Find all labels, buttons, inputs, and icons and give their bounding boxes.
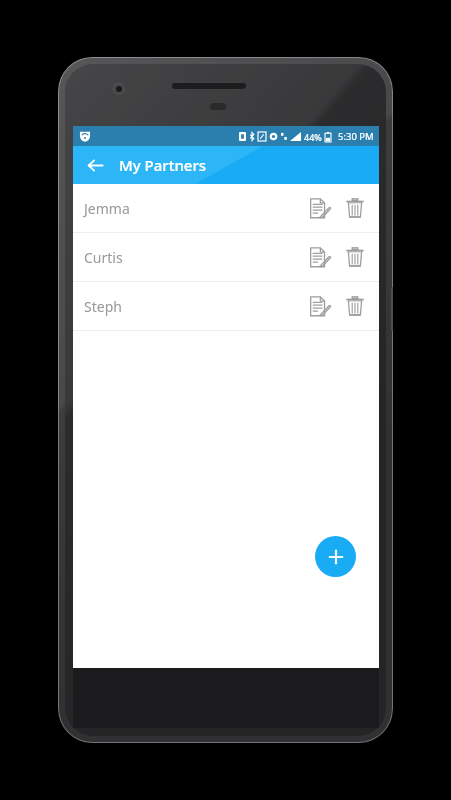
button[interactable]: Jemma [73, 184, 379, 232]
staticText: Curtis [84, 248, 302, 267]
button[interactable]: Delete Steph [338, 289, 372, 323]
button[interactable]: Delete Curtis [338, 240, 372, 274]
staticText: Steph [84, 297, 302, 316]
staticText: My Partners [119, 155, 207, 175]
button[interactable]: Steph [73, 282, 379, 330]
button[interactable]: Delete Jemma [338, 191, 372, 225]
staticText: 5:30 PM [338, 130, 374, 143]
button[interactable]: Back [78, 148, 112, 182]
button[interactable]: Curtis [73, 233, 379, 281]
staticText: 44% [304, 131, 322, 143]
staticText: Jemma [84, 199, 302, 218]
button[interactable]: Edit Steph [302, 289, 336, 323]
button[interactable]: Edit Curtis [302, 240, 336, 274]
button[interactable]: Edit Jemma [302, 191, 336, 225]
button[interactable]: Add partner [315, 536, 356, 577]
